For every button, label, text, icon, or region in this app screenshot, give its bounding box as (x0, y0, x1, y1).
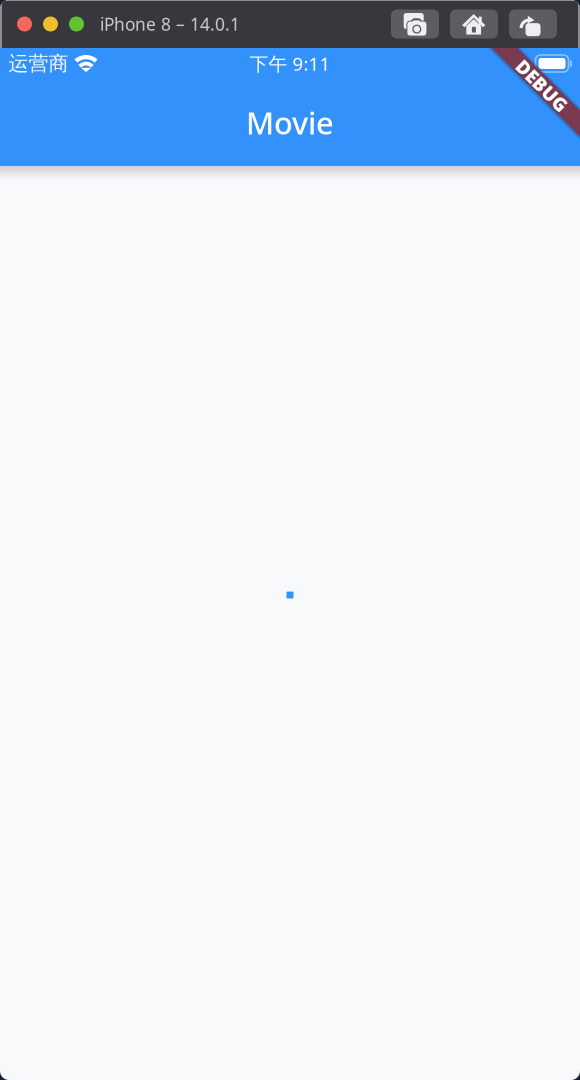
staticText: DEBUG (509, 73, 574, 98)
staticText: 下午 9:11 (249, 51, 330, 76)
button[interactable]: Rotate (509, 9, 557, 38)
staticText: Movie (246, 102, 334, 143)
button[interactable]: Zoom (69, 16, 84, 31)
button[interactable]: Screenshot (391, 9, 439, 38)
staticText: iPhone 8 – 14.0.1 (100, 12, 240, 35)
staticText: 运营商 (8, 51, 68, 76)
button[interactable]: Home (450, 9, 498, 38)
button[interactable]: Minimise (43, 16, 58, 31)
button[interactable]: Close (17, 16, 32, 31)
